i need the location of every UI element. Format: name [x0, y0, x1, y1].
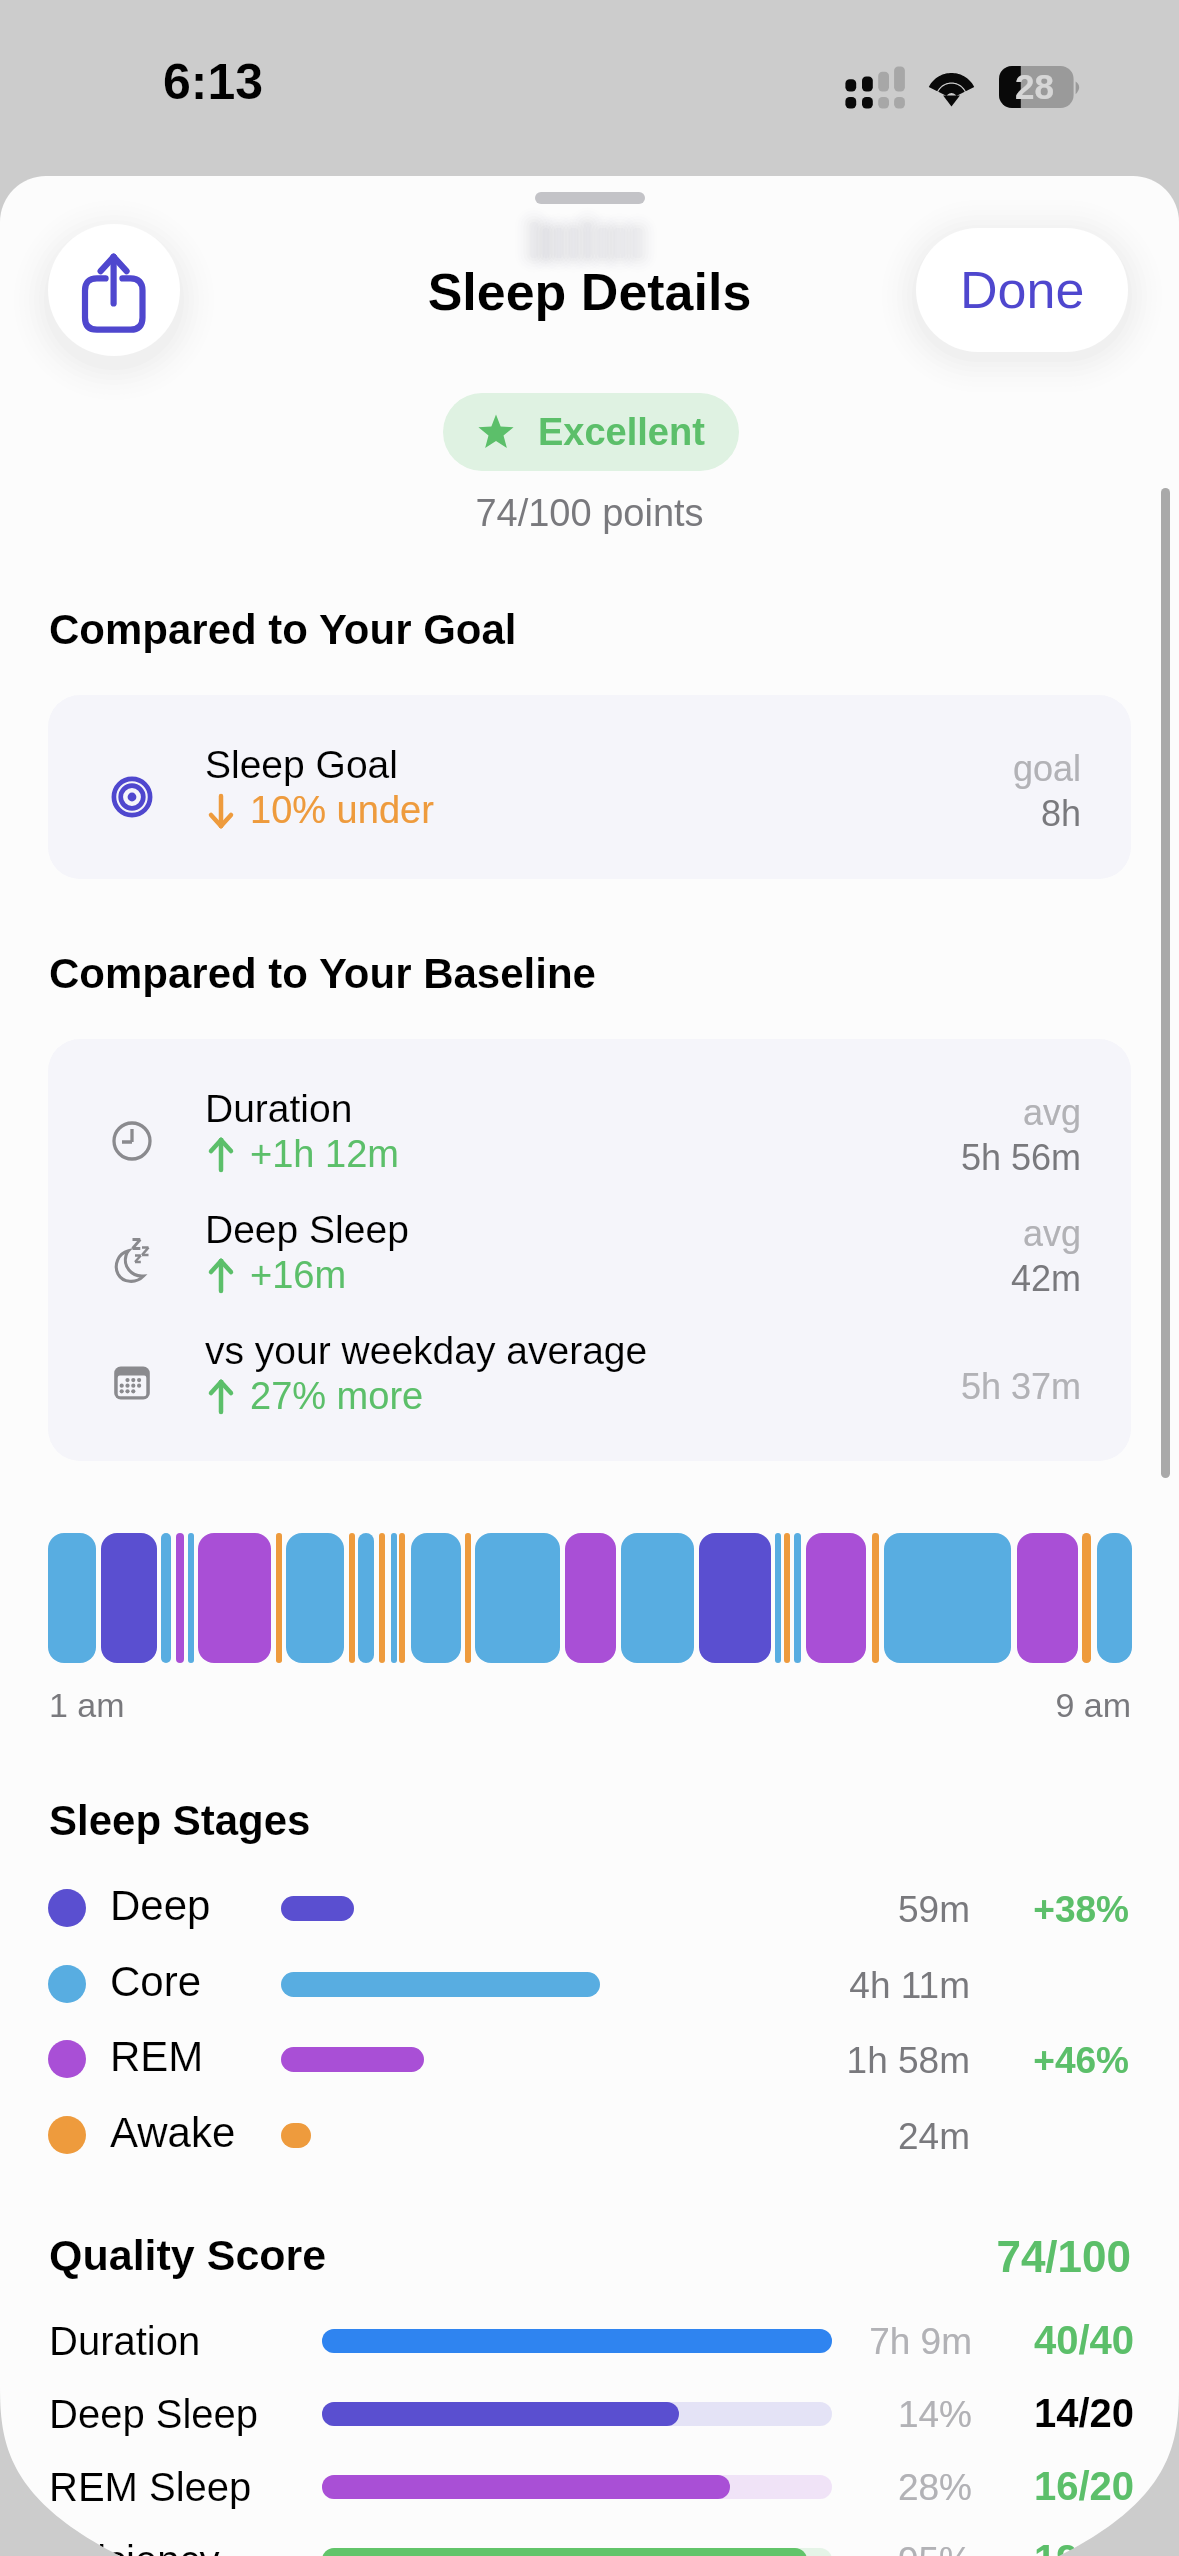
staticText: Compared to Your Goal — [49, 606, 517, 653]
staticText: REM — [110, 2033, 204, 2080]
staticText: 9 am — [931, 1686, 1131, 1724]
staticText: Deep — [110, 1882, 211, 1929]
button[interactable]: REM — [0, 2021, 1179, 2097]
staticText: Sleep Stages — [49, 1797, 311, 1844]
staticText: +16m — [250, 1254, 347, 1296]
button[interactable]: Share — [48, 224, 180, 356]
button[interactable]: Duration — [0, 2305, 1179, 2378]
button[interactable]: Core — [0, 1946, 1179, 2022]
staticText: 19/20 — [930, 2537, 1134, 2556]
button[interactable]: vs your weekday average — [48, 1324, 1131, 1443]
staticText: 8h — [748, 793, 1081, 833]
staticText: Awake — [110, 2109, 236, 2156]
staticText: 59m — [700, 1889, 970, 1930]
staticText: avg — [748, 1092, 1081, 1132]
staticText: Efficiency — [49, 2538, 220, 2556]
button[interactable]: REM Sleep — [0, 2451, 1179, 2524]
staticText: 7h 9m — [700, 2321, 972, 2362]
staticText: 27% more — [250, 1375, 424, 1417]
staticText: 10% under — [250, 789, 434, 831]
staticText: Core — [110, 1958, 202, 2005]
staticText: 28 — [1015, 67, 1054, 106]
button[interactable]: Efficiency — [0, 2524, 1179, 2556]
staticText: 16/20 — [930, 2464, 1134, 2509]
button[interactable]: Sleep Goal — [48, 695, 1131, 879]
button[interactable]: Duration — [48, 1082, 1131, 1201]
staticText: Duration — [49, 2319, 201, 2364]
staticText: 28% — [700, 2467, 972, 2508]
staticText: 1h 58m — [700, 2040, 970, 2081]
staticText: Deep Sleep — [49, 2392, 259, 2437]
staticText: goal — [748, 748, 1081, 788]
staticText: Sleep Goal — [205, 743, 398, 787]
staticText: 95% — [700, 2540, 972, 2556]
button[interactable]: Deep — [0, 1870, 1179, 1946]
button[interactable]: Sleep Goal — [48, 738, 1131, 857]
staticText: Done — [960, 261, 1085, 319]
staticText: REM Sleep — [49, 2465, 252, 2510]
staticText: 1 am — [49, 1686, 125, 1724]
button[interactable]: Excellent — [443, 393, 739, 471]
button[interactable]: Done — [916, 228, 1128, 352]
staticText: avg — [748, 1213, 1081, 1253]
staticText: 4h 11m — [700, 1965, 970, 2006]
staticText: Excellent — [538, 411, 705, 453]
staticText: 5h 56m — [748, 1137, 1081, 1177]
staticText: 14/20 — [930, 2391, 1134, 2436]
staticText: 5h 37m — [748, 1366, 1081, 1406]
staticText: Duration — [205, 1087, 353, 1131]
staticText: Quality Score — [49, 2231, 327, 2279]
staticText: 42m — [748, 1258, 1081, 1298]
button[interactable]: Deep Sleep — [0, 2378, 1179, 2451]
staticText: 24m — [700, 2116, 970, 2157]
staticText: vs your weekday average — [205, 1329, 648, 1373]
staticText: 74/100 points — [0, 492, 1179, 534]
staticText: +46% — [929, 2040, 1129, 2081]
staticText: +38% — [929, 1889, 1129, 1930]
staticText: 74/100 — [831, 2232, 1131, 2281]
staticText: +1h 12m — [250, 1133, 399, 1175]
button[interactable]: Awake — [0, 2097, 1179, 2173]
staticText: 6:13 — [163, 54, 264, 110]
staticText: 40/40 — [930, 2318, 1134, 2363]
staticText: Compared to Your Baseline — [49, 950, 596, 997]
staticText: 14% — [700, 2394, 972, 2435]
button[interactable]: Deep Sleep — [48, 1203, 1131, 1322]
staticText: Sleep Details — [0, 263, 1179, 321]
staticText: Deep Sleep — [205, 1208, 409, 1252]
